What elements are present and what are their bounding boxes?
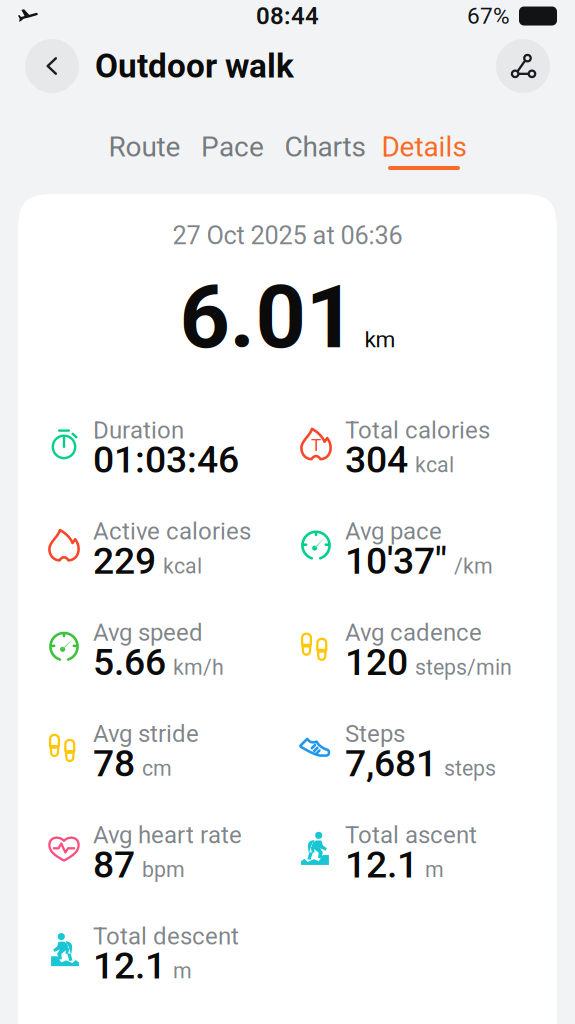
staticText: T xyxy=(311,435,321,455)
staticText: Avg stride xyxy=(93,720,199,747)
button[interactable]: Back xyxy=(25,39,79,93)
button[interactable]: Pace xyxy=(188,100,276,194)
staticText: Details xyxy=(381,131,466,163)
staticText: 27 Oct 2025 at 06:36 xyxy=(172,221,402,250)
staticText: /km xyxy=(454,554,493,578)
staticText: Avg heart rate xyxy=(93,821,242,849)
staticText: cm xyxy=(142,756,172,781)
staticText: Duration xyxy=(93,416,184,444)
staticText: Charts xyxy=(284,131,365,163)
button[interactable]: Route xyxy=(100,100,188,194)
staticText: 12.1 xyxy=(93,944,166,987)
staticText: kcal xyxy=(415,453,454,477)
staticText: 7,681 xyxy=(345,742,437,785)
staticText: 6.01 xyxy=(179,267,355,367)
staticText: 01:03:46 xyxy=(93,438,239,481)
staticText: Avg pace xyxy=(345,518,442,545)
staticText: Route xyxy=(108,131,180,163)
staticText: Avg speed xyxy=(93,619,203,646)
staticText: Total calories xyxy=(345,416,490,444)
staticText: Avg cadence xyxy=(345,619,482,646)
staticText: bpm xyxy=(142,858,185,882)
staticText: km/h xyxy=(173,655,224,680)
staticText: Pace xyxy=(201,131,264,163)
staticText: Steps xyxy=(345,720,405,747)
staticText: 304 xyxy=(345,438,408,481)
staticText: m xyxy=(425,858,444,882)
staticText: km xyxy=(364,327,395,352)
staticText: steps xyxy=(444,756,496,781)
staticText: Total ascent xyxy=(345,821,477,849)
staticText: 87 xyxy=(93,843,135,886)
staticText: Outdoor walk xyxy=(95,47,294,85)
staticText: 229 xyxy=(93,540,156,582)
staticText: 08:44 xyxy=(256,2,319,30)
staticText: 120 xyxy=(345,641,408,684)
staticText: Total descent xyxy=(93,922,239,950)
staticText: 67% xyxy=(467,3,510,29)
staticText: steps/min xyxy=(415,655,512,680)
staticText: 12.1 xyxy=(345,843,418,886)
staticText: 5.66 xyxy=(93,641,166,684)
staticText: 10'37" xyxy=(345,540,447,582)
staticText: m xyxy=(173,959,192,983)
staticText: kcal xyxy=(163,554,202,578)
button[interactable]: Charts xyxy=(276,100,373,194)
staticText: Active calories xyxy=(93,518,251,545)
button[interactable]: Share xyxy=(496,39,550,93)
button[interactable]: Details xyxy=(373,100,474,194)
staticText: 78 xyxy=(93,742,135,785)
